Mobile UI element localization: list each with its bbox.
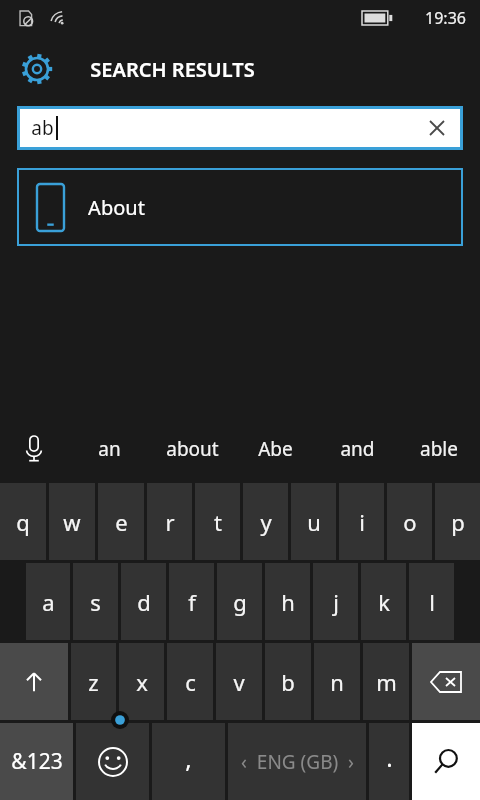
staticText: u [307, 507, 321, 537]
button[interactable]: ‹ ENG (GB) › [228, 723, 366, 800]
button[interactable]: &123 [0, 723, 73, 800]
button[interactable]: Voice input [0, 415, 68, 483]
button[interactable]: b [265, 643, 311, 720]
button[interactable]: l [409, 563, 454, 640]
staticText: l [429, 587, 435, 617]
button[interactable]: Shift [0, 643, 68, 720]
staticText: n [330, 667, 344, 697]
staticText: Abe [258, 436, 293, 462]
staticText: k [378, 587, 390, 617]
staticText: ‹ ENG (GB) › [241, 749, 354, 775]
staticText: &123 [11, 747, 63, 776]
staticText: , [185, 742, 192, 775]
staticText: j [333, 587, 339, 617]
button[interactable]: k [361, 563, 406, 640]
button[interactable]: c [167, 643, 213, 720]
staticText: p [451, 507, 465, 537]
button[interactable]: i [339, 483, 384, 560]
button[interactable]: Backspace [412, 643, 480, 720]
staticText: e [115, 507, 128, 537]
button[interactable]: h [265, 563, 310, 640]
button[interactable]: an [68, 415, 151, 483]
staticText: q [16, 507, 30, 537]
button[interactable]: v [216, 643, 262, 720]
button[interactable]: y [243, 483, 288, 560]
button[interactable]: q [0, 483, 46, 560]
staticText: able [420, 436, 458, 462]
button[interactable]: m [363, 643, 409, 720]
button[interactable]: Abe [234, 415, 316, 483]
staticText: w [63, 507, 81, 537]
button[interactable]: z [71, 643, 116, 720]
button[interactable]: s [73, 563, 118, 640]
button[interactable]: Clear search [424, 115, 450, 141]
button[interactable]: u [291, 483, 336, 560]
button[interactable]: , [152, 723, 225, 800]
staticText: r [165, 507, 175, 537]
button[interactable]: p [435, 483, 480, 560]
button[interactable]: e [98, 483, 144, 560]
button[interactable]: f [169, 563, 214, 640]
staticText: . [386, 741, 393, 774]
button[interactable]: t [195, 483, 240, 560]
button[interactable]: about [151, 415, 234, 483]
button[interactable]: o [387, 483, 432, 560]
staticText: 19:36 [425, 7, 466, 29]
staticText: b [281, 667, 295, 697]
button[interactable]: x [119, 643, 164, 720]
button[interactable]: About [17, 168, 463, 246]
button[interactable]: r [147, 483, 192, 560]
staticText: and [340, 436, 375, 462]
staticText: v [233, 667, 245, 697]
staticText: o [403, 507, 417, 537]
staticText: g [233, 587, 247, 617]
staticText: m [376, 667, 397, 697]
staticText: h [281, 587, 295, 617]
staticText: x [136, 667, 148, 697]
staticText: c [185, 667, 196, 697]
button[interactable]: ab [20, 109, 460, 147]
staticText: s [90, 587, 101, 617]
staticText: about [166, 436, 219, 462]
button[interactable]: Emoji [76, 723, 149, 800]
button[interactable]: j [313, 563, 358, 640]
staticText: i [359, 507, 365, 537]
staticText: t [214, 507, 222, 537]
staticText: y [260, 507, 272, 537]
button[interactable]: . [369, 723, 409, 800]
staticText: SEARCH RESULTS [90, 56, 255, 83]
button[interactable]: w [49, 483, 95, 560]
button[interactable]: n [314, 643, 360, 720]
button[interactable]: Search [412, 723, 480, 800]
button[interactable]: able [398, 415, 480, 483]
staticText: ab [31, 115, 54, 141]
button[interactable]: d [121, 563, 166, 640]
staticText: an [98, 436, 121, 462]
button[interactable]: a [26, 563, 70, 640]
staticText: a [42, 587, 55, 617]
staticText: About [88, 194, 145, 221]
staticText: z [88, 667, 99, 697]
staticText: f [188, 587, 196, 617]
button[interactable]: and [316, 415, 398, 483]
button[interactable]: g [217, 563, 262, 640]
staticText: d [137, 587, 151, 617]
